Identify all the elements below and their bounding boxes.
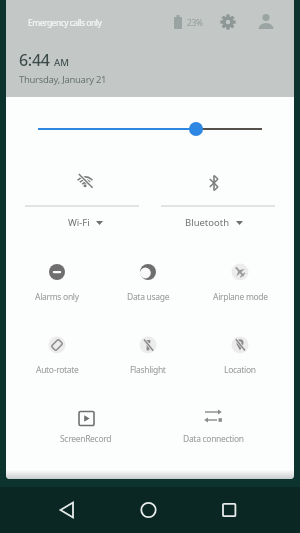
button[interactable] — [17, 317, 97, 379]
staticText: Airplane mode — [213, 291, 268, 303]
button[interactable] — [46, 398, 126, 450]
button[interactable] — [209, 492, 249, 528]
staticText: Thursday, January 21 — [19, 73, 107, 86]
button[interactable] — [166, 8, 210, 36]
staticText: Wi-Fi — [68, 216, 90, 229]
staticText: 6:44 — [19, 49, 50, 71]
staticText: Data connection — [183, 433, 244, 445]
staticText: Bluetooth — [185, 216, 230, 229]
button[interactable] — [200, 244, 280, 306]
button[interactable] — [128, 492, 168, 528]
button[interactable] — [108, 317, 188, 379]
button[interactable] — [30, 116, 270, 142]
staticText: AM — [54, 56, 69, 69]
button[interactable] — [173, 398, 253, 450]
button[interactable] — [200, 317, 280, 379]
button[interactable] — [47, 492, 87, 528]
staticText: Auto-rotate — [36, 364, 79, 376]
staticText: Alarms only — [35, 291, 79, 303]
staticText: Location — [224, 364, 256, 376]
staticText: ScreenRecord — [60, 433, 112, 445]
staticText: Emergency calls only — [28, 17, 102, 29]
staticText: Data usage — [127, 291, 170, 303]
button[interactable] — [108, 244, 188, 306]
staticText: Flashlight — [130, 364, 166, 376]
staticText: 23% — [187, 17, 203, 29]
button[interactable] — [214, 8, 242, 36]
button[interactable] — [252, 8, 280, 36]
button[interactable] — [152, 158, 287, 236]
button[interactable] — [17, 244, 97, 306]
button[interactable] — [15, 158, 150, 236]
